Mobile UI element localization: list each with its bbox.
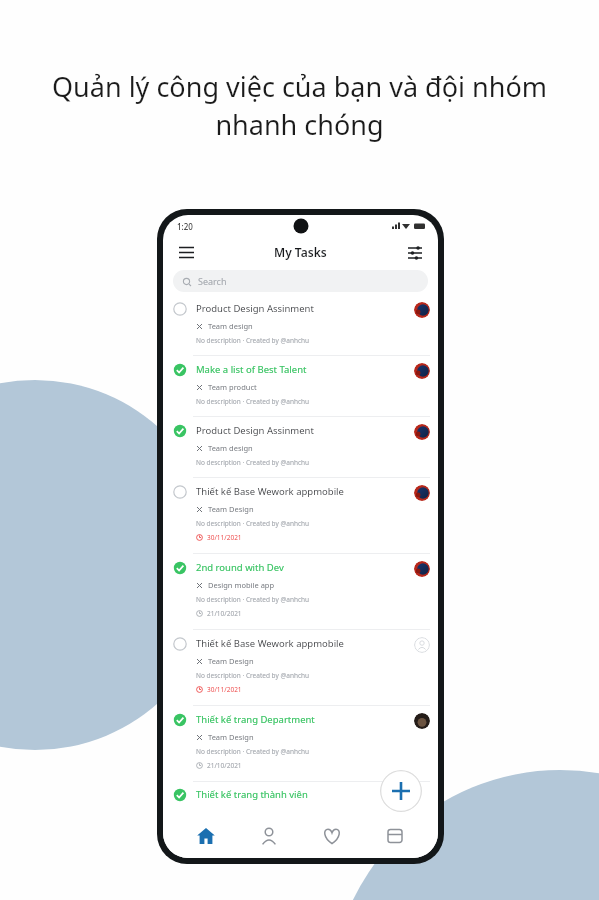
staticText: Team Design [208, 732, 254, 742]
staticText: Thiết kế trang thành viên [196, 788, 308, 801]
button[interactable]: Thiết kế trang thành viên [163, 782, 438, 806]
staticText: Design mobile app [208, 580, 275, 590]
button[interactable]: Library [366, 814, 424, 858]
staticText: Team product [208, 382, 257, 392]
button[interactable]: Filter [402, 239, 428, 265]
button[interactable]: Menu [173, 239, 199, 265]
staticText: 2nd round with Dev [196, 561, 284, 574]
button[interactable]: Search [173, 270, 428, 292]
button[interactable]: Thiết kế Base Wework appmobile [163, 630, 438, 705]
button[interactable]: Favorites [303, 814, 361, 858]
staticText: Quản lý công việc của bạn và đội nhóm nh… [24, 68, 575, 143]
staticText: Make a list of Best Talent [196, 363, 307, 376]
staticText: Team design [208, 321, 253, 331]
staticText: Team design [208, 443, 253, 453]
staticText: No description · Created by @anhchu [196, 519, 310, 528]
button[interactable]: Add task [380, 770, 422, 812]
staticText: Product Design Assinment [196, 302, 314, 315]
staticText: No description · Created by @anhchu [196, 671, 310, 680]
staticText: No description · Created by @anhchu [196, 397, 310, 406]
staticText: No description · Created by @anhchu [196, 595, 310, 604]
staticText: 1:20 [177, 221, 193, 232]
button[interactable]: Product Design Assinment [163, 417, 438, 477]
staticText: Team Design [208, 504, 254, 514]
staticText: Search [198, 275, 227, 287]
button[interactable]: Home [177, 814, 235, 858]
staticText: 30/11/2021 [207, 533, 242, 542]
button[interactable]: Make a list of Best Talent [163, 356, 438, 416]
staticText: Thiết kế trang Department [196, 713, 315, 726]
staticText: No description · Created by @anhchu [196, 747, 310, 756]
button[interactable]: Thiết kế trang Department [163, 706, 438, 781]
button[interactable]: Profile [240, 814, 298, 858]
button[interactable]: Product Design Assinment [163, 295, 438, 355]
staticText: No description · Created by @anhchu [196, 336, 310, 345]
staticText: Product Design Assinment [196, 424, 314, 437]
staticText: Thiết kế Base Wework appmobile [196, 485, 344, 498]
staticText: 30/11/2021 [207, 685, 242, 694]
staticText: 21/10/2021 [207, 761, 242, 770]
staticText: 21/10/2021 [207, 609, 242, 618]
button[interactable]: 2nd round with Dev [163, 554, 438, 629]
staticText: No description · Created by @anhchu [196, 458, 310, 467]
button[interactable]: Thiết kế Base Wework appmobile [163, 478, 438, 553]
staticText: Team Design [208, 656, 254, 666]
staticText: My Tasks [274, 244, 327, 260]
staticText: Thiết kế Base Wework appmobile [196, 637, 344, 650]
